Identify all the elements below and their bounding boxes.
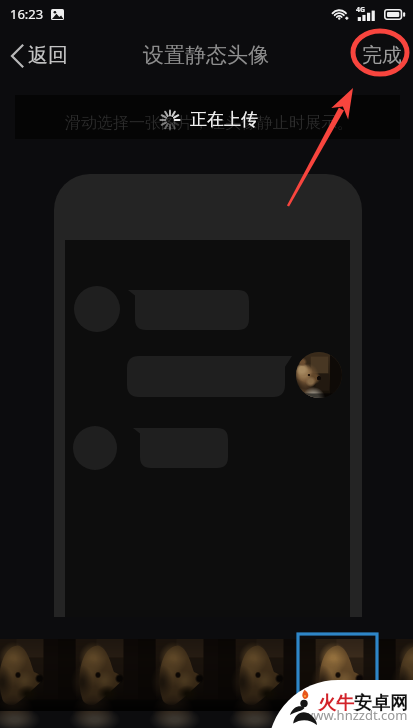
- button[interactable]: [138, 639, 218, 711]
- staticText: 正在上传: [190, 109, 258, 130]
- button[interactable]: 完成: [350, 35, 413, 76]
- staticText: 4G: [356, 5, 366, 15]
- staticText: 完成: [362, 43, 402, 68]
- button[interactable]: [58, 639, 138, 711]
- staticText: 滑动选择一张图片，让头像静止时展示。: [65, 113, 353, 133]
- staticText: 16:23: [10, 5, 44, 23]
- staticText: 火牛: [318, 692, 354, 715]
- staticText: www.hnzzdt.com: [303, 706, 408, 724]
- staticText: 返回: [28, 43, 68, 68]
- button[interactable]: Selected frame: [298, 634, 377, 711]
- button[interactable]: [298, 639, 378, 711]
- button[interactable]: [218, 639, 298, 711]
- button[interactable]: [0, 639, 58, 711]
- staticText: 设置静态头像: [143, 42, 269, 68]
- button[interactable]: [378, 639, 413, 711]
- staticText: 安卓网: [354, 692, 408, 715]
- button[interactable]: 返回: [0, 35, 82, 76]
